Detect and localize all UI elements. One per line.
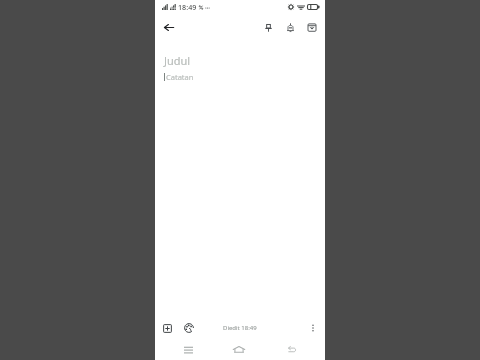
staticText: 18:49 xyxy=(178,2,197,12)
button[interactable]: Catatan xyxy=(164,72,194,82)
button[interactable]: Pin xyxy=(257,17,279,38)
button[interactable]: Change colour xyxy=(178,318,200,338)
button[interactable]: More options xyxy=(302,318,324,338)
button[interactable]: Back xyxy=(159,18,178,37)
button[interactable]: Recent apps xyxy=(177,339,199,360)
button[interactable]: Archive xyxy=(301,17,323,38)
button[interactable]: Back xyxy=(281,339,303,360)
button[interactable]: Reminder xyxy=(279,17,301,38)
staticText: Catatan xyxy=(166,72,194,82)
staticText: Diedit 18:49 xyxy=(223,324,257,332)
button[interactable]: Home xyxy=(228,339,250,360)
button[interactable]: Judul xyxy=(164,53,191,68)
button[interactable]: Add xyxy=(156,318,178,338)
